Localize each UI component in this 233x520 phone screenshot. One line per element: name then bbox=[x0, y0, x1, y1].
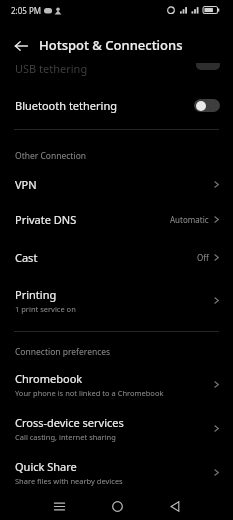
staticText: 2:05 PM bbox=[11, 5, 42, 16]
staticText: Private DNS bbox=[15, 212, 77, 227]
button[interactable]: Recent apps bbox=[45, 492, 73, 520]
staticText: VPN bbox=[15, 177, 37, 192]
staticText: Quick Share bbox=[15, 459, 77, 474]
staticText: Connection preferences bbox=[15, 346, 111, 358]
staticText: USB tethering bbox=[15, 61, 88, 76]
button[interactable]: Quick Share bbox=[0, 455, 233, 489]
staticText: Automatic bbox=[170, 214, 209, 225]
staticText: 1 print service on bbox=[15, 304, 76, 314]
button[interactable]: Printing bbox=[0, 283, 233, 317]
staticText: Share files with nearby devices bbox=[15, 476, 123, 486]
staticText: Other Connection bbox=[15, 150, 87, 162]
staticText: Chromebook bbox=[15, 371, 83, 386]
button[interactable]: Cross-device services bbox=[0, 411, 233, 445]
staticText: Your phone is not linked to a Chromebook bbox=[15, 388, 164, 398]
staticText: Printing bbox=[15, 287, 57, 302]
button[interactable]: Home bbox=[103, 492, 131, 520]
staticText: Off bbox=[197, 252, 209, 263]
button[interactable]: Cast bbox=[0, 242, 233, 272]
button[interactable]: VPN bbox=[0, 169, 233, 199]
button[interactable]: Back bbox=[9, 34, 32, 57]
staticText: Call casting, internet sharing bbox=[15, 432, 116, 442]
button[interactable]: Chromebook bbox=[0, 367, 233, 401]
staticText: Bluetooth tethering bbox=[15, 98, 117, 113]
staticText: Hotspot & Connections bbox=[39, 36, 183, 54]
staticText: Cast bbox=[15, 250, 38, 265]
button[interactable]: Bluetooth tethering bbox=[0, 89, 233, 121]
button[interactable]: Back bbox=[161, 492, 189, 520]
button[interactable]: Private DNS bbox=[0, 204, 233, 234]
staticText: Cross-device services bbox=[15, 415, 124, 430]
